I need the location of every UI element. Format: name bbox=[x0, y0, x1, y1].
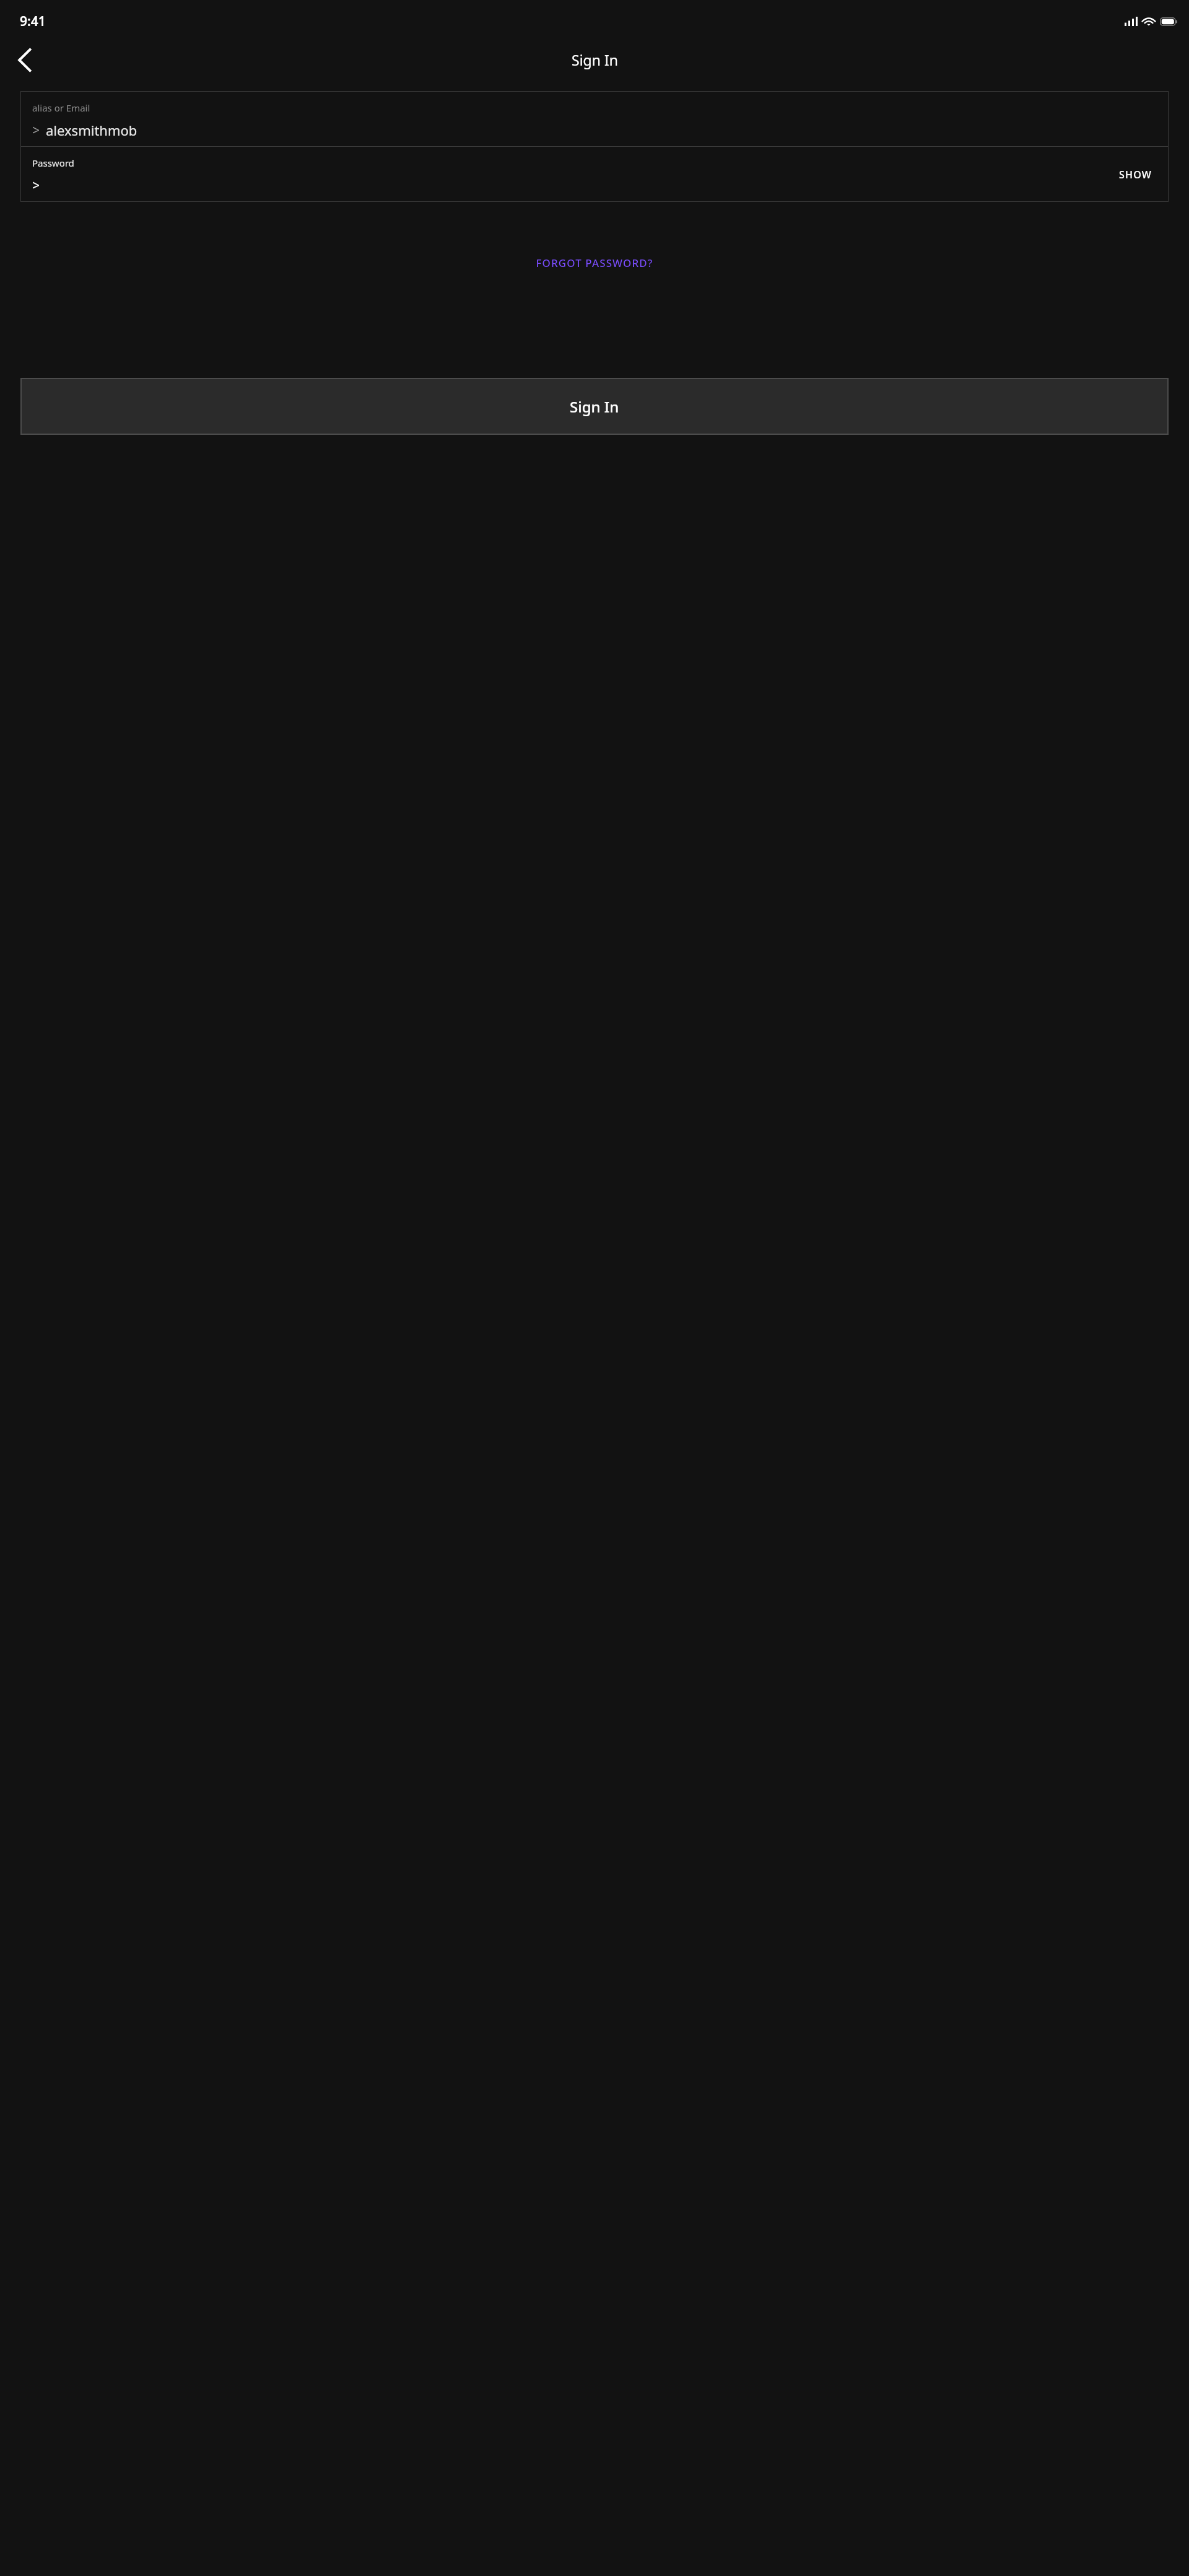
button[interactable]: alias or Email bbox=[20, 91, 1169, 146]
staticText: Sign In bbox=[570, 396, 619, 417]
staticText: 9:41 bbox=[20, 12, 46, 30]
button[interactable]: Back bbox=[12, 48, 37, 72]
staticText: SHOW bbox=[1119, 168, 1152, 181]
staticText: alias or Email bbox=[32, 102, 90, 114]
staticText: > bbox=[32, 177, 40, 194]
staticText: alexsmithmob bbox=[46, 121, 137, 139]
button[interactable]: Password bbox=[20, 147, 1169, 202]
staticText: Password bbox=[32, 157, 74, 169]
staticText: Sign In bbox=[572, 50, 618, 69]
button[interactable]: Sign In bbox=[20, 378, 1169, 435]
staticText: FORGOT PASSWORD? bbox=[536, 256, 653, 270]
button[interactable]: SHOW bbox=[1117, 164, 1155, 185]
button[interactable]: FORGOT PASSWORD? bbox=[528, 251, 661, 275]
staticText: > bbox=[32, 121, 40, 139]
